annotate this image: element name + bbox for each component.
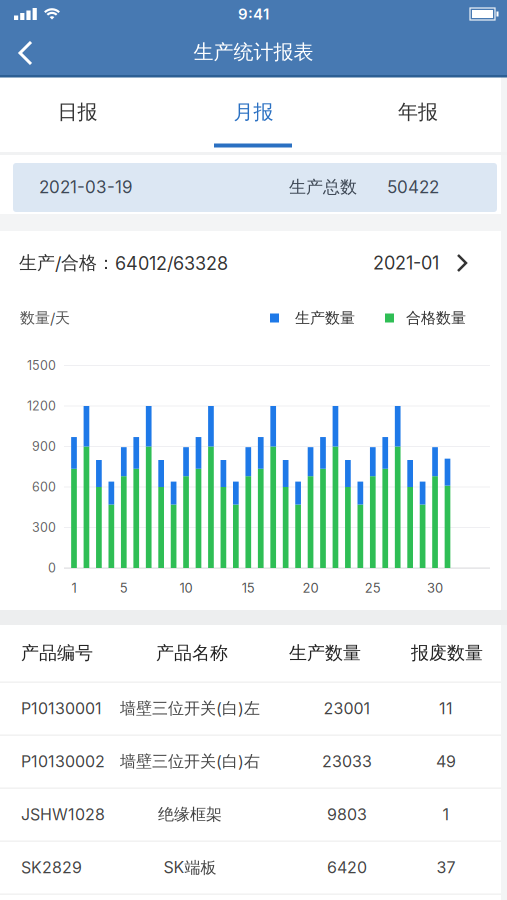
- staticText: JSHW1028: [21, 805, 105, 824]
- staticText: 年报: [398, 100, 438, 124]
- staticText: 49: [436, 752, 456, 771]
- staticText: 产品编号: [21, 642, 93, 664]
- staticText: 报废数量: [411, 642, 483, 664]
- staticText: 生产数量: [295, 309, 355, 327]
- staticText: 数量/天: [20, 309, 70, 327]
- staticText: 23033: [322, 752, 372, 771]
- staticText: 300: [32, 520, 56, 535]
- staticText: 产品名称: [156, 642, 228, 664]
- staticText: 25: [365, 580, 381, 596]
- staticText: 10: [180, 580, 193, 596]
- staticText: SK端板: [163, 858, 216, 877]
- staticText: 9:41: [238, 5, 269, 23]
- staticText: 1: [71, 580, 76, 596]
- staticText: 生产数量: [289, 642, 361, 664]
- staticText: 1: [442, 805, 449, 824]
- staticText: 50422: [387, 177, 439, 197]
- staticText: 1500: [27, 358, 56, 373]
- staticText: 6420: [327, 858, 367, 877]
- staticText: 2021-03-19: [39, 177, 133, 197]
- staticText: SK2829: [21, 858, 82, 877]
- staticText: 23001: [323, 699, 370, 718]
- staticText: 生产/合格：64012/63328: [19, 252, 228, 274]
- staticText: P10130001: [21, 699, 102, 718]
- staticText: 墙壁三位开关(白)左: [120, 699, 260, 718]
- staticText: 600: [32, 480, 56, 494]
- staticText: 绝缘框架: [158, 805, 222, 824]
- staticText: 5: [120, 580, 128, 596]
- staticText: 11: [439, 699, 453, 718]
- staticText: 900: [32, 439, 56, 454]
- staticText: 9803: [327, 805, 367, 824]
- staticText: 20: [302, 580, 318, 596]
- staticText: 15: [242, 580, 255, 596]
- staticText: 生产总数: [289, 177, 357, 197]
- staticText: 日报: [57, 100, 97, 124]
- staticText: 0: [48, 561, 56, 575]
- staticText: 墙壁三位开关(白)右: [120, 752, 260, 771]
- staticText: 30: [427, 580, 443, 596]
- staticText: 生产统计报表: [193, 40, 313, 64]
- staticText: 合格数量: [406, 309, 466, 327]
- staticText: 1200: [27, 399, 56, 413]
- staticText: 2021-01: [373, 252, 439, 274]
- staticText: P10130002: [21, 752, 105, 771]
- staticText: 37: [436, 858, 455, 877]
- staticText: 月报: [233, 100, 273, 124]
